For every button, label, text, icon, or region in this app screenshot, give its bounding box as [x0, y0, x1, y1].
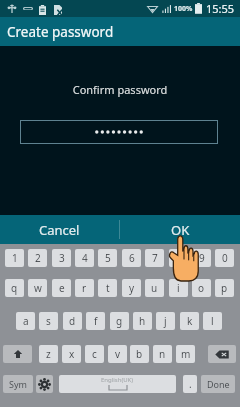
- button[interactable]: 6: [122, 249, 141, 267]
- button[interactable]: u: [145, 279, 164, 297]
- button[interactable]: 3: [52, 249, 71, 267]
- button[interactable]: d: [63, 312, 82, 330]
- staticText: OK: [171, 221, 190, 239]
- button[interactable]: 8: [169, 249, 188, 267]
- staticText: b: [136, 347, 143, 361]
- button[interactable]: 2: [28, 249, 47, 267]
- staticText: Cancel: [39, 221, 80, 239]
- button[interactable]: Cancel: [0, 215, 119, 244]
- button[interactable]: Shift: [3, 345, 32, 363]
- staticText: h: [139, 314, 146, 328]
- button[interactable]: c: [85, 345, 104, 363]
- button[interactable]: 7: [145, 249, 164, 267]
- button[interactable]: Done: [201, 375, 235, 393]
- button[interactable]: g: [110, 312, 129, 330]
- staticText: s: [46, 314, 51, 328]
- button[interactable]: Space: [59, 375, 176, 393]
- staticText: Confirm password: [0, 82, 240, 97]
- button[interactable]: q: [5, 279, 24, 297]
- button[interactable]: a: [16, 312, 35, 330]
- staticText: c: [92, 347, 97, 361]
- button[interactable]: x: [62, 345, 81, 363]
- button[interactable]: f: [86, 312, 105, 330]
- staticText: Sym: [9, 378, 27, 390]
- staticText: Done: [207, 378, 230, 390]
- button[interactable]: h: [133, 312, 152, 330]
- button[interactable]: i: [169, 279, 188, 297]
- staticText: Create password: [7, 23, 114, 41]
- staticText: j: [164, 314, 167, 328]
- staticText: l: [211, 314, 214, 328]
- staticText: u: [151, 281, 158, 295]
- button[interactable]: 1: [5, 249, 24, 267]
- button[interactable]: s: [39, 312, 58, 330]
- button[interactable]: b: [130, 345, 149, 363]
- staticText: 1: [12, 251, 18, 265]
- staticText: 2: [35, 251, 41, 265]
- button[interactable]: t: [98, 279, 117, 297]
- button[interactable]: j: [156, 312, 175, 330]
- button[interactable]: m: [176, 345, 195, 363]
- button[interactable]: p: [215, 279, 234, 297]
- button[interactable]: 0: [215, 249, 234, 267]
- staticText: x: [69, 347, 75, 361]
- staticText: e: [59, 281, 65, 295]
- staticText: 4: [82, 251, 88, 265]
- staticText: 0: [222, 251, 228, 265]
- button[interactable]: r: [75, 279, 94, 297]
- staticText: p: [221, 281, 228, 295]
- staticText: 7: [152, 251, 158, 265]
- button[interactable]: o: [192, 279, 211, 297]
- staticText: 6: [129, 251, 135, 265]
- staticText: r: [82, 281, 87, 295]
- staticText: n: [159, 347, 166, 361]
- staticText: g: [116, 314, 123, 328]
- staticText: d: [69, 314, 76, 328]
- staticText: .: [189, 377, 192, 391]
- button[interactable]: 4: [75, 249, 94, 267]
- staticText: a: [23, 314, 29, 328]
- button[interactable]: w: [28, 279, 47, 297]
- staticText: t: [106, 281, 110, 295]
- staticText: 15:55: [206, 1, 235, 16]
- staticText: m: [181, 347, 191, 361]
- staticText: f: [94, 314, 98, 328]
- button[interactable]: OK: [120, 215, 240, 244]
- staticText: 100%: [174, 4, 193, 14]
- staticText: v: [115, 347, 121, 361]
- button[interactable]: v: [108, 345, 127, 363]
- button[interactable]: 5: [98, 249, 117, 267]
- staticText: 8: [176, 251, 182, 265]
- button[interactable]: e: [52, 279, 71, 297]
- button[interactable]: Backspace: [208, 345, 236, 363]
- button[interactable]: n: [153, 345, 172, 363]
- staticText: q: [11, 281, 18, 295]
- button[interactable]: 9: [192, 249, 211, 267]
- staticText: w: [34, 281, 42, 295]
- staticText: 9: [199, 251, 205, 265]
- button[interactable]: .: [183, 375, 197, 393]
- staticText: English(UK): [101, 376, 134, 384]
- button[interactable]: Settings: [36, 375, 53, 393]
- button[interactable]: k: [180, 312, 199, 330]
- button[interactable]: [20, 120, 218, 144]
- staticText: i: [177, 281, 180, 295]
- staticText: y: [129, 281, 135, 295]
- button[interactable]: Sym: [3, 375, 33, 393]
- staticText: k: [187, 314, 193, 328]
- staticText: o: [198, 281, 205, 295]
- staticText: 3: [59, 251, 65, 265]
- button[interactable]: y: [122, 279, 141, 297]
- staticText: 5: [105, 251, 111, 265]
- staticText: z: [46, 347, 51, 361]
- button[interactable]: z: [39, 345, 58, 363]
- button[interactable]: l: [203, 312, 222, 330]
